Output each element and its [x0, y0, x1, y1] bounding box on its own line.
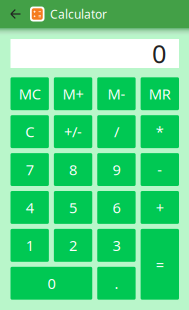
staticText: 9	[112, 160, 120, 179]
staticText: 6	[112, 198, 120, 217]
button[interactable]: 0	[10, 267, 92, 300]
staticText: MR	[149, 84, 171, 103]
staticText: 7	[26, 160, 34, 179]
staticText: 2	[69, 236, 77, 255]
button[interactable]: /	[97, 115, 136, 148]
button[interactable]: 1	[10, 229, 49, 262]
button[interactable]: +	[141, 191, 179, 224]
button[interactable]: 8	[54, 153, 92, 186]
button[interactable]: M-	[97, 77, 136, 110]
button[interactable]: =	[141, 229, 179, 300]
staticText: +/-	[64, 122, 82, 141]
button[interactable]: .	[97, 267, 136, 300]
staticText: *	[156, 122, 164, 141]
staticText: MC	[19, 84, 41, 103]
button[interactable]: -	[141, 153, 179, 186]
staticText: 1	[26, 236, 34, 255]
button[interactable]: 6	[97, 191, 136, 224]
button[interactable]: 2	[54, 229, 92, 262]
button[interactable]: *	[141, 115, 179, 148]
staticText: 0	[152, 37, 166, 70]
staticText: M-	[107, 84, 125, 103]
button[interactable]: MC	[10, 77, 49, 110]
button[interactable]: C	[10, 115, 49, 148]
button[interactable]: 4	[10, 191, 49, 224]
staticText: 3	[112, 236, 120, 255]
staticText: -	[157, 160, 162, 179]
staticText: =	[156, 255, 164, 274]
staticText: M+	[63, 84, 84, 103]
staticText: 4	[26, 198, 34, 217]
staticText: /	[114, 122, 119, 141]
staticText: 5	[69, 198, 77, 217]
staticText: C	[25, 122, 34, 141]
staticText: Calculator	[50, 6, 107, 22]
staticText: .	[114, 273, 118, 293]
button[interactable]: Back	[0, 0, 30, 28]
staticText: 0	[47, 273, 55, 293]
button[interactable]: +/-	[54, 115, 92, 148]
staticText: 8	[69, 160, 77, 179]
button[interactable]: MR	[141, 77, 179, 110]
button[interactable]: 3	[97, 229, 136, 262]
button[interactable]: M+	[54, 77, 92, 110]
button[interactable]: 9	[97, 153, 136, 186]
button[interactable]: 7	[10, 153, 49, 186]
button[interactable]: 5	[54, 191, 92, 224]
staticText: +	[156, 198, 164, 217]
